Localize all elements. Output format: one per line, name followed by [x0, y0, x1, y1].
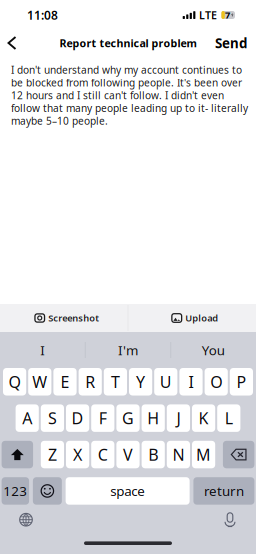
button[interactable]: Emoji — [33, 477, 62, 505]
button[interactable]: Back — [0, 30, 24, 56]
button[interactable]: I'm — [85, 332, 171, 368]
staticText: V — [123, 444, 133, 465]
staticText: 123 — [3, 482, 27, 500]
staticText: R — [85, 371, 95, 392]
button[interactable]: Delete — [223, 441, 254, 468]
button[interactable]: You — [171, 332, 256, 368]
button[interactable]: Shift — [2, 441, 33, 468]
button[interactable]: H — [142, 404, 165, 432]
staticText: W — [32, 371, 47, 392]
button[interactable]: S — [41, 404, 64, 432]
button[interactable]: L — [217, 404, 240, 432]
staticText: Q — [9, 371, 21, 392]
staticText: B — [148, 444, 158, 465]
button[interactable]: U — [154, 368, 177, 395]
staticText: Upload — [185, 312, 218, 324]
staticText: C — [98, 444, 108, 465]
staticText: J — [176, 407, 180, 429]
staticText: I'm — [118, 341, 138, 359]
button[interactable]: space — [66, 477, 190, 505]
staticText: return — [204, 482, 244, 500]
staticText: U — [160, 371, 172, 392]
button[interactable]: O — [205, 368, 228, 395]
button[interactable]: Upload — [128, 304, 256, 332]
button[interactable]: F — [91, 404, 114, 432]
staticText: Send — [215, 34, 247, 52]
button[interactable]: Switch keyboard — [13, 510, 39, 530]
staticText: E — [60, 371, 69, 392]
staticText: 11:08 — [27, 7, 58, 23]
staticText: LTE — [199, 8, 217, 22]
staticText: M — [196, 444, 211, 465]
staticText: A — [22, 407, 32, 429]
staticText: Report technical problem — [59, 36, 196, 50]
staticText: D — [72, 407, 84, 429]
button[interactable]: Numbers — [2, 477, 29, 505]
button[interactable]: J — [167, 404, 190, 432]
staticText: P — [236, 371, 246, 392]
staticText: 7 — [225, 9, 230, 21]
staticText: You — [202, 341, 225, 359]
button[interactable]: E — [53, 368, 77, 395]
button[interactable]: W — [28, 368, 51, 395]
button[interactable]: B — [142, 441, 165, 468]
button[interactable]: I — [0, 332, 85, 368]
staticText: Z — [48, 444, 57, 465]
button[interactable]: C — [91, 441, 114, 468]
staticText: F — [99, 407, 107, 429]
staticText: L — [225, 407, 233, 429]
staticText: I — [188, 371, 193, 392]
staticText: Screenshot — [48, 312, 99, 324]
button[interactable]: G — [116, 404, 140, 432]
button[interactable]: K — [192, 404, 215, 432]
button[interactable]: D — [66, 404, 89, 432]
staticText: space — [110, 482, 145, 500]
staticText: G — [122, 407, 134, 429]
staticText: X — [73, 444, 82, 465]
button[interactable]: T — [104, 368, 127, 395]
button[interactable]: Q — [3, 368, 26, 395]
button[interactable]: I — [179, 368, 203, 395]
button[interactable]: M — [192, 441, 215, 468]
staticText: T — [111, 371, 120, 392]
button[interactable]: R — [79, 368, 102, 395]
staticText: H — [147, 407, 159, 429]
button[interactable]: Z — [41, 441, 64, 468]
button[interactable]: Dictate — [217, 510, 243, 530]
staticText: I don't understand why my account contin… — [11, 63, 248, 128]
staticText: O — [210, 371, 222, 392]
staticText: Y — [136, 371, 145, 392]
staticText: K — [199, 407, 209, 429]
button[interactable]: A — [16, 404, 39, 432]
button[interactable]: Send — [215, 30, 247, 56]
staticText: S — [48, 407, 57, 429]
button[interactable]: P — [230, 368, 253, 395]
button[interactable]: X — [66, 441, 89, 468]
button[interactable]: Return — [193, 477, 254, 505]
button[interactable]: Y — [129, 368, 152, 395]
button[interactable]: Screenshot — [0, 304, 128, 332]
button[interactable]: N — [167, 441, 190, 468]
staticText: N — [172, 444, 184, 465]
button[interactable]: V — [116, 441, 140, 468]
staticText: I — [40, 341, 45, 359]
